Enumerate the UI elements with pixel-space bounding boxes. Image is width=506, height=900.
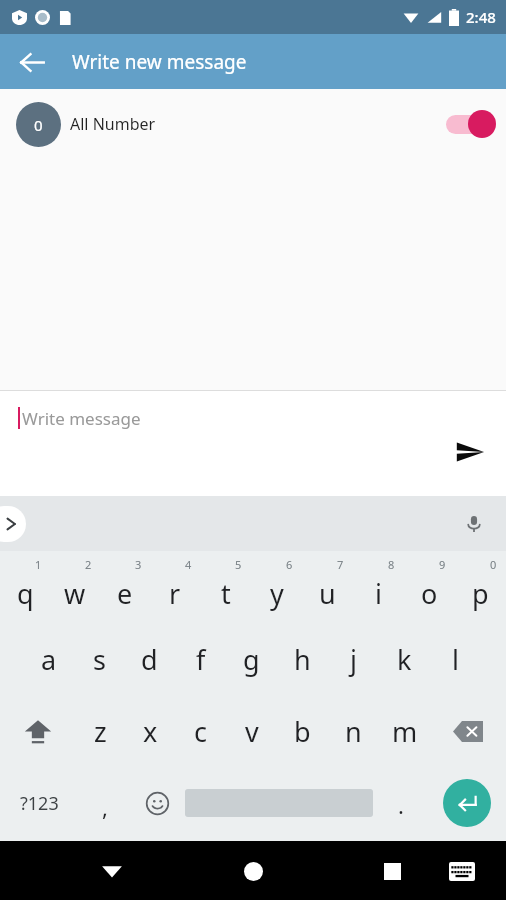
staticText: e [117, 575, 133, 612]
button[interactable]: Backspace [430, 695, 506, 767]
staticText: g [243, 641, 260, 678]
staticText: . [398, 790, 404, 820]
staticText: h [294, 641, 311, 678]
staticText: 2 [85, 557, 92, 572]
button[interactable]: Recents [368, 847, 416, 895]
button[interactable]: b [277, 695, 328, 767]
button[interactable]: l [430, 623, 481, 695]
staticText: n [345, 713, 362, 750]
staticText: 6 [286, 557, 293, 572]
button[interactable]: m [379, 695, 430, 767]
button[interactable]: g [226, 623, 277, 695]
button[interactable]: x [125, 695, 175, 767]
button[interactable]: 0 [455, 551, 506, 623]
staticText: w [64, 575, 86, 612]
staticText: k [397, 641, 412, 678]
button[interactable]: 7 [302, 551, 353, 623]
staticText: 3 [135, 557, 142, 572]
staticText: All Number [70, 113, 156, 135]
button[interactable]: Toggle all numbers [444, 101, 506, 147]
button[interactable]: Back [8, 38, 56, 86]
button[interactable]: Emoji [131, 767, 184, 839]
button[interactable]: ?123 [0, 767, 78, 839]
button[interactable]: Hide keyboard [88, 847, 136, 895]
staticText: ?123 [20, 791, 59, 816]
staticText: Write new message [72, 49, 247, 75]
staticText: r [169, 575, 181, 612]
staticText: 0 [34, 115, 43, 135]
staticText: s [93, 641, 106, 678]
button[interactable]: c [175, 695, 226, 767]
staticText: 5 [235, 557, 242, 572]
button[interactable]: Expand suggestions [0, 506, 26, 542]
button[interactable]: Shift [0, 695, 75, 767]
staticText: f [196, 641, 206, 678]
staticText: i [375, 575, 382, 612]
button[interactable]: d [124, 623, 175, 695]
staticText: 4 [185, 557, 192, 572]
staticText: c [194, 713, 207, 750]
button[interactable]: Enter [427, 767, 506, 839]
staticText: 0 [490, 557, 497, 572]
button[interactable]: Voice input [454, 504, 494, 544]
button[interactable]: h [277, 623, 328, 695]
staticText: j [350, 641, 357, 678]
button[interactable]: . [374, 767, 427, 839]
button[interactable]: f [175, 623, 226, 695]
button[interactable]: 6 [251, 551, 302, 623]
staticText: a [41, 641, 57, 678]
button[interactable]: 0 [0, 89, 506, 159]
staticText: q [17, 575, 34, 612]
staticText: z [94, 713, 107, 750]
button[interactable]: Send [444, 426, 496, 478]
button[interactable]: 4 [150, 551, 200, 623]
button[interactable]: Space [184, 767, 374, 839]
button[interactable]: 9 [404, 551, 455, 623]
staticText: 2:48 [466, 7, 496, 27]
button[interactable]: 3 [100, 551, 150, 623]
button[interactable]: 5 [200, 551, 251, 623]
staticText: x [143, 713, 158, 750]
button[interactable]: 2 [50, 551, 100, 623]
staticText: d [141, 641, 158, 678]
button[interactable]: k [379, 623, 430, 695]
staticText: l [452, 641, 459, 678]
staticText: o [421, 575, 438, 612]
button[interactable]: a [24, 623, 74, 695]
staticText: Write message [22, 407, 141, 430]
button[interactable]: v [226, 695, 277, 767]
staticText: y [270, 575, 284, 612]
staticText: 7 [337, 557, 344, 572]
button[interactable]: j [328, 623, 379, 695]
staticText: v [245, 713, 259, 750]
staticText: 1 [35, 557, 42, 572]
button[interactable]: n [328, 695, 379, 767]
staticText: t [221, 575, 231, 612]
staticText: 9 [439, 557, 446, 572]
button[interactable]: 1 [0, 551, 50, 623]
button[interactable]: s [74, 623, 124, 695]
staticText: b [294, 713, 311, 750]
staticText: 8 [388, 557, 395, 572]
button[interactable]: , [78, 767, 131, 839]
staticText: p [472, 575, 489, 612]
button[interactable]: Home [229, 847, 277, 895]
staticText: m [392, 713, 418, 750]
staticText: u [319, 575, 336, 612]
button[interactable]: Switch keyboard [440, 849, 484, 893]
button[interactable]: 8 [353, 551, 404, 623]
button[interactable]: z [75, 695, 125, 767]
staticText: , [102, 792, 108, 822]
